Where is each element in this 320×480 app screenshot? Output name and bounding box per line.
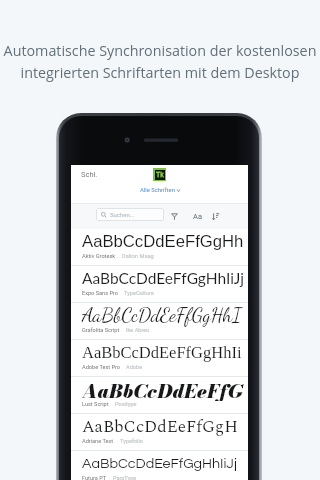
staticText: AaBbCcDdEeFfGgHh [82, 414, 244, 438]
staticText: Positype [115, 401, 137, 408]
staticText: ParaType [113, 475, 137, 480]
staticText: AaBbCcDdEeFfGgHhIiJj [82, 303, 244, 327]
staticText: Schl. [81, 170, 98, 179]
staticText: AaBbCcDdEeFfGgHhI [82, 232, 244, 251]
staticText: Typefolio [120, 438, 143, 445]
button[interactable]: AaBbCcDdEeFfGgHhIiJjK [71, 451, 248, 480]
staticText: AaBbCcDdEeFfGgHhIiJ [82, 343, 244, 361]
button[interactable]: Typekit [153, 168, 166, 181]
staticText: Lust Script [82, 401, 109, 408]
staticText: Suchen... [110, 211, 135, 218]
staticText: Dalton Maag [122, 253, 154, 260]
staticText: Adriane Text [82, 438, 114, 445]
staticText: Aktiv Grotesk [82, 253, 116, 260]
staticText: Alle Schriften [140, 187, 175, 194]
staticText: Adobe Text Pro [82, 364, 120, 371]
staticText: TypeCulture [124, 290, 154, 297]
button[interactable]: AaBbCcDdEeFfGgHhI [71, 229, 248, 266]
button[interactable]: AaBbCcDdEeFfGgHhIiJj [71, 303, 248, 340]
staticText: AaBbCcDdEeFfGgHhIiJjK [82, 456, 244, 471]
button[interactable]: AaBbCcDdEeFfGgHh [71, 414, 248, 451]
staticText: Grafolita Script [82, 327, 120, 334]
staticText: Tk [156, 171, 164, 179]
staticText: Aa [193, 212, 202, 221]
staticText: Expo Sans Pro [82, 290, 118, 297]
button[interactable]: AaBbCcDdEeFfGgHhIiJ [71, 340, 248, 377]
staticText: Automatische Synchronisation der kostenl… [0, 41, 320, 83]
button[interactable]: Filter [168, 210, 181, 223]
button[interactable]: Suchen... [96, 208, 164, 221]
button[interactable]: Aa [190, 210, 204, 223]
staticText: Ike Abreu [126, 327, 150, 334]
button[interactable]: Sortieren [209, 210, 222, 223]
button[interactable]: AaBbCcDdEeFfGg [71, 377, 248, 414]
button[interactable]: Alle Schriften [71, 184, 248, 203]
staticText: AaBbCcDdEeFfGg [82, 377, 244, 401]
staticText: Futura PT [82, 475, 107, 480]
staticText: AaBbCcDdEeFfGgHhIiJjI [82, 269, 244, 288]
staticText: Adobe [126, 364, 143, 371]
button[interactable]: AaBbCcDdEeFfGgHhIiJjI [71, 266, 248, 303]
